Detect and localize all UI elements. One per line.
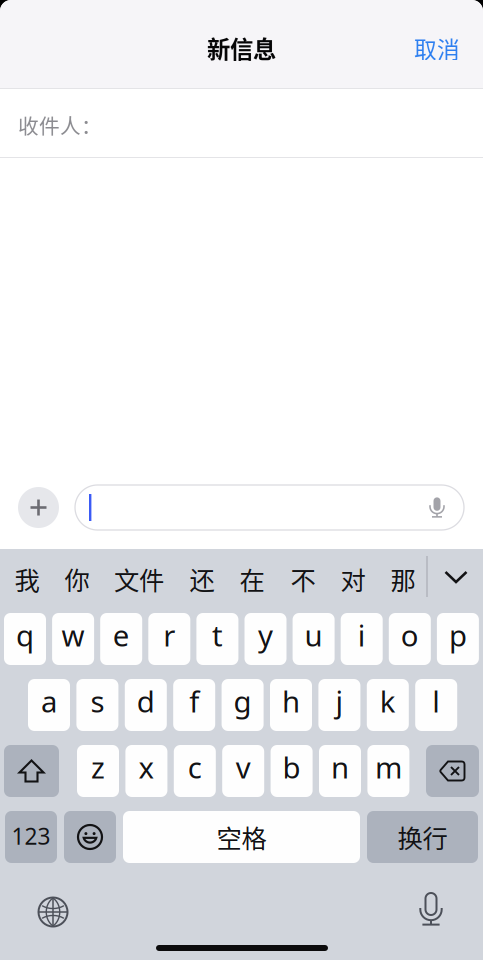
button[interactable]: Delete xyxy=(426,745,479,797)
staticText: w xyxy=(62,615,85,654)
button[interactable]: w xyxy=(52,613,94,665)
staticText: 123 xyxy=(11,821,50,851)
button[interactable]: n xyxy=(319,745,361,797)
staticText: q xyxy=(16,615,34,654)
staticText: 不 xyxy=(290,561,315,597)
button[interactable]: Emoji xyxy=(64,811,116,863)
button[interactable]: e xyxy=(100,613,142,665)
button[interactable]: m xyxy=(367,745,409,797)
staticText: g xyxy=(234,681,252,720)
button[interactable]: Switch keyboard xyxy=(31,890,75,934)
button[interactable]: v xyxy=(222,745,264,797)
button[interactable]: j xyxy=(318,679,360,731)
staticText: s xyxy=(90,681,104,720)
button[interactable]: b xyxy=(271,745,313,797)
staticText: o xyxy=(401,615,419,654)
button[interactable]: o xyxy=(389,613,431,665)
staticText: d xyxy=(137,681,155,720)
staticText: 取消 xyxy=(414,32,460,64)
button[interactable]: 不 xyxy=(281,553,324,605)
staticText: p xyxy=(449,615,467,654)
button[interactable]: d xyxy=(125,679,167,731)
button[interactable]: 123 xyxy=(5,811,57,863)
button[interactable]: Dictation xyxy=(409,887,453,931)
staticText: 换行 xyxy=(397,819,447,855)
staticText: e xyxy=(113,615,130,654)
button[interactable]: q xyxy=(4,613,46,665)
staticText: f xyxy=(189,681,199,720)
staticText: 空格 xyxy=(216,819,266,855)
button[interactable]: k xyxy=(367,679,409,731)
button[interactable]: 取消 xyxy=(391,18,483,70)
staticText: i xyxy=(358,615,366,654)
button[interactable]: 空格 xyxy=(123,811,360,863)
staticText: 文件 xyxy=(114,561,164,597)
button[interactable]: 还 xyxy=(180,553,223,605)
button[interactable]: x xyxy=(125,745,167,797)
button[interactable]: s xyxy=(76,679,118,731)
button[interactable]: i xyxy=(341,613,383,665)
staticText: b xyxy=(283,747,301,786)
button[interactable]: r xyxy=(148,613,190,665)
staticText: 我 xyxy=(14,561,39,597)
staticText: j xyxy=(335,681,343,720)
button[interactable]: Collapse candidates xyxy=(431,555,481,599)
button[interactable]: 我 xyxy=(5,553,48,605)
staticText: 收件人： xyxy=(18,110,102,140)
button[interactable]: t xyxy=(196,613,238,665)
staticText: 对 xyxy=(340,561,365,597)
staticText: 还 xyxy=(189,561,214,597)
button[interactable]: Shift xyxy=(4,745,59,797)
staticText: c xyxy=(188,747,202,786)
staticText: a xyxy=(41,681,57,720)
button[interactable]: y xyxy=(244,613,286,665)
button[interactable]: g xyxy=(222,679,264,731)
button[interactable]: z xyxy=(77,745,119,797)
button[interactable]: h xyxy=(270,679,312,731)
button[interactable]: 那 xyxy=(381,553,424,605)
button[interactable]: 换行 xyxy=(367,811,478,863)
staticText: k xyxy=(380,681,396,720)
button[interactable]: p xyxy=(437,613,479,665)
staticText: l xyxy=(432,681,440,720)
staticText: y xyxy=(258,615,273,654)
staticText: 你 xyxy=(64,561,89,597)
staticText: n xyxy=(331,747,349,786)
staticText: 新信息 xyxy=(207,31,276,65)
button[interactable]: 你 xyxy=(55,553,98,605)
staticText: x xyxy=(138,747,154,786)
staticText: z xyxy=(91,747,105,786)
button[interactable]: a xyxy=(28,679,70,731)
button[interactable]: 对 xyxy=(331,553,374,605)
staticText: r xyxy=(163,615,175,654)
staticText: 在 xyxy=(239,561,264,597)
staticText: t xyxy=(212,615,223,654)
staticText: v xyxy=(236,747,251,786)
button[interactable]: 在 xyxy=(230,553,273,605)
button[interactable]: c xyxy=(174,745,216,797)
button[interactable]: More options xyxy=(18,487,59,528)
button[interactable]: u xyxy=(293,613,335,665)
button[interactable]: l xyxy=(415,679,457,731)
staticText: h xyxy=(282,681,300,720)
button[interactable]: f xyxy=(173,679,215,731)
staticText: 那 xyxy=(390,561,415,597)
staticText: m xyxy=(375,747,402,786)
button[interactable]: 文件 xyxy=(105,553,173,605)
staticText: u xyxy=(305,615,323,654)
